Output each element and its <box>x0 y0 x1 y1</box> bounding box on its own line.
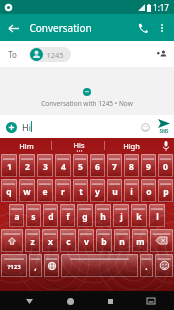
button[interactable]: e <box>37 179 53 202</box>
staticText: x <box>48 236 53 248</box>
staticText: His <box>73 140 85 150</box>
button[interactable]: z <box>25 229 40 252</box>
button[interactable]: n <box>114 229 130 252</box>
staticText: 3 <box>43 161 48 173</box>
staticText: . <box>145 261 148 273</box>
staticText: b <box>101 236 107 248</box>
button[interactable]: Recent apps <box>101 292 119 310</box>
button[interactable]: j <box>113 204 129 227</box>
button[interactable]: s <box>26 204 41 227</box>
button[interactable]: Add recipient <box>154 46 170 62</box>
staticText: p <box>163 186 169 198</box>
button[interactable]: v <box>78 229 94 252</box>
staticText: To <box>8 49 17 60</box>
staticText: , <box>34 261 37 273</box>
staticText: a <box>14 211 20 223</box>
staticText: High <box>123 141 140 151</box>
button[interactable]: t <box>73 179 88 202</box>
button[interactable]: a <box>9 204 24 227</box>
button[interactable]: q <box>1 179 17 202</box>
button[interactable]: 4 <box>55 154 71 177</box>
button[interactable]: p <box>158 179 173 202</box>
button[interactable]: 6 <box>90 154 105 177</box>
button[interactable]: f <box>60 204 75 227</box>
staticText: k <box>136 211 142 223</box>
staticText: 1245 <box>46 50 64 60</box>
staticText: 6 <box>95 161 100 173</box>
staticText: 7 <box>112 161 117 173</box>
button[interactable]: Add attachment <box>2 118 20 136</box>
staticText: d <box>48 211 54 223</box>
button[interactable]: 5 <box>73 154 88 177</box>
staticText: j <box>120 211 123 223</box>
button[interactable] <box>61 254 138 277</box>
button[interactable] <box>1 229 23 252</box>
button[interactable]: l <box>149 204 165 227</box>
button[interactable]: 2 <box>19 154 35 177</box>
staticText: o <box>146 186 152 198</box>
button[interactable]: Back <box>3 18 23 38</box>
button[interactable]: 1 <box>1 154 17 177</box>
staticText: s <box>31 211 36 223</box>
staticText: 4 <box>61 161 66 173</box>
staticText: 1:17 <box>153 2 169 13</box>
staticText: 8 <box>129 161 134 173</box>
button[interactable]: Him <box>0 138 52 153</box>
staticText: z <box>30 236 35 248</box>
button[interactable] <box>150 229 173 252</box>
button[interactable]: 0 <box>158 154 173 177</box>
button[interactable]: c <box>60 229 76 252</box>
staticText: 2 <box>25 161 30 173</box>
staticText: Conversation <box>29 21 92 35</box>
staticText: u <box>112 186 118 198</box>
button[interactable]: , <box>29 254 42 277</box>
button[interactable]: 7 <box>107 154 122 177</box>
button[interactable]: Home <box>61 292 79 310</box>
button[interactable]: Send SMS <box>155 119 172 134</box>
staticText: v <box>84 236 89 248</box>
button[interactable]: o <box>141 179 156 202</box>
button[interactable]: 9 <box>141 154 156 177</box>
button[interactable]: r <box>55 179 71 202</box>
staticText: m <box>136 236 145 248</box>
button[interactable]: Back <box>20 292 38 310</box>
staticText: ?123 <box>7 263 21 271</box>
staticText: Him <box>19 141 34 151</box>
button[interactable]: 1245 <box>29 47 71 62</box>
staticText: e <box>42 186 48 198</box>
button[interactable]: w <box>19 179 35 202</box>
button[interactable]: m <box>132 229 148 252</box>
button[interactable]: k <box>131 204 147 227</box>
staticText: w <box>23 186 31 198</box>
staticText: 5 <box>78 161 83 173</box>
button[interactable]: ?123 <box>1 254 27 277</box>
staticText: Conversation with 1245 • Now <box>41 99 133 108</box>
button[interactable]: b <box>96 229 112 252</box>
button[interactable]: y <box>90 179 105 202</box>
button[interactable]: His <box>52 138 105 153</box>
button[interactable]: 3 <box>37 154 53 177</box>
staticText: q <box>6 186 12 198</box>
staticText: 0 <box>163 161 168 173</box>
button[interactable]: g <box>77 204 93 227</box>
button[interactable] <box>155 254 173 277</box>
staticText: c <box>66 236 71 248</box>
button[interactable]: h <box>95 204 111 227</box>
button[interactable]: i <box>124 179 139 202</box>
staticText: y <box>95 186 100 198</box>
button[interactable]: 8 <box>124 154 139 177</box>
button[interactable]: d <box>43 204 58 227</box>
staticText: t <box>79 186 83 198</box>
button[interactable]: Call <box>133 18 153 38</box>
button[interactable] <box>44 254 59 277</box>
button[interactable]: More options <box>153 19 171 37</box>
button[interactable]: Voice input <box>158 138 174 153</box>
staticText: i <box>130 186 133 198</box>
button[interactable]: x <box>42 229 58 252</box>
button[interactable]: . <box>140 254 153 277</box>
button[interactable]: Switch keyboard <box>142 292 160 310</box>
button[interactable]: u <box>107 179 122 202</box>
button[interactable]: Emoji <box>137 119 153 135</box>
button[interactable]: High <box>105 138 158 153</box>
staticText: l <box>156 211 159 223</box>
